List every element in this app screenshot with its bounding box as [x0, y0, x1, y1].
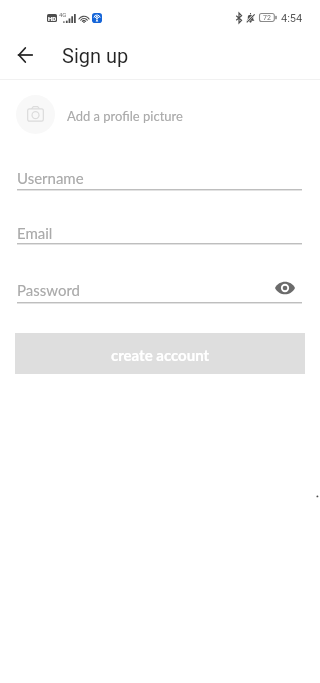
- button[interactable]: create account: [15, 333, 305, 374]
- staticText: 4G: [59, 11, 67, 18]
- staticText: Email: [17, 224, 53, 242]
- staticText: Sign up: [62, 44, 129, 67]
- staticText: create account: [111, 346, 210, 364]
- staticText: 72: [263, 14, 271, 22]
- staticText: 4:54: [281, 12, 303, 25]
- button[interactable]: Add a profile picture: [16, 95, 55, 134]
- staticText: HD: [48, 15, 57, 22]
- staticText: Username: [17, 169, 84, 187]
- button[interactable]: Back: [9, 39, 41, 71]
- staticText: Add a profile picture: [67, 108, 183, 124]
- staticText: Password: [17, 281, 80, 299]
- button[interactable]: Show password: [272, 275, 298, 301]
